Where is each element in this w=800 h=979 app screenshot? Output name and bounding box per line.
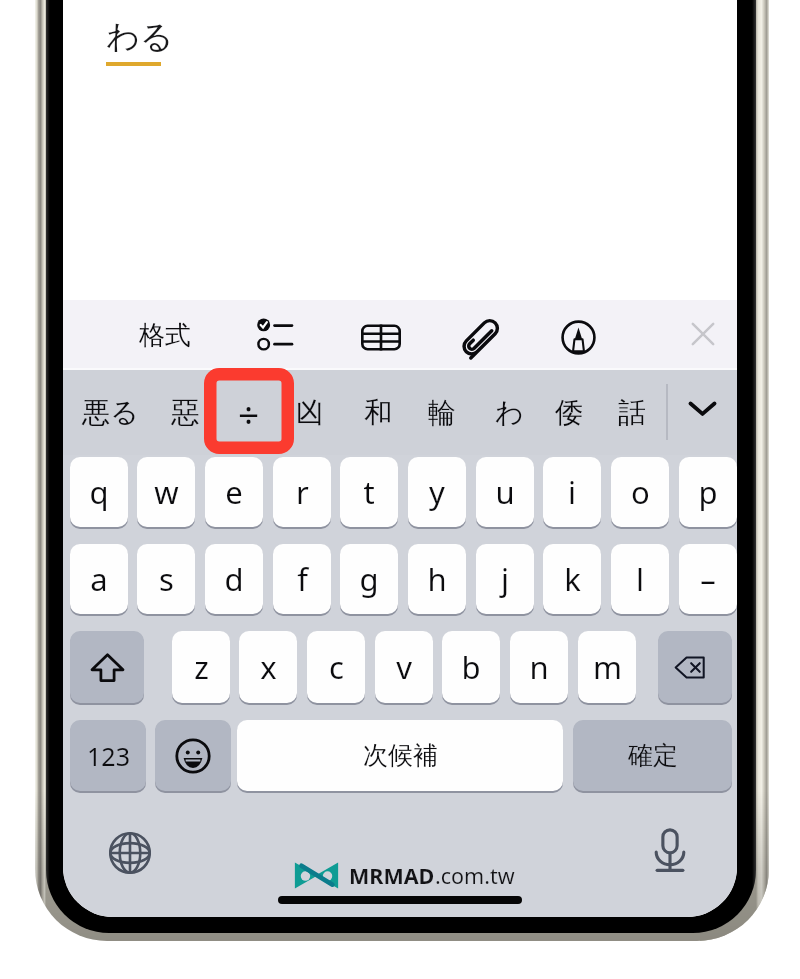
staticText: a	[90, 558, 108, 600]
staticText: q	[89, 471, 109, 513]
button[interactable]: s	[137, 544, 195, 614]
staticText: 凶	[296, 395, 324, 430]
staticText: 倭	[555, 395, 583, 430]
staticText: 輪	[428, 395, 456, 430]
button[interactable]: 確定	[573, 720, 732, 791]
button[interactable]: 話	[604, 370, 660, 455]
staticText: r	[296, 471, 309, 513]
staticText: –	[700, 558, 716, 600]
button[interactable]: Switch keyboard	[101, 824, 159, 882]
staticText: p	[698, 471, 718, 513]
button[interactable]: u	[476, 457, 534, 527]
button[interactable]: n	[510, 631, 568, 703]
button[interactable]: a	[70, 544, 128, 614]
button[interactable]: Dictation	[639, 820, 701, 882]
button[interactable]: b	[442, 631, 500, 703]
button[interactable]: p	[679, 457, 737, 527]
button[interactable]: m	[578, 631, 636, 703]
button[interactable]: g	[340, 544, 398, 614]
button[interactable]: h	[408, 544, 466, 614]
staticText: 話	[618, 395, 646, 430]
staticText: y	[429, 471, 445, 513]
button[interactable]: Attach	[455, 311, 505, 365]
button[interactable]: x	[239, 631, 297, 703]
staticText: k	[564, 558, 581, 600]
staticText: .com.tw	[435, 861, 515, 890]
button[interactable]: j	[476, 544, 534, 614]
button[interactable]: z	[172, 631, 230, 703]
staticText: h	[427, 558, 447, 600]
button[interactable]: Markup	[553, 312, 604, 363]
button[interactable]: w	[137, 457, 195, 527]
staticText: ÷	[238, 388, 260, 438]
staticText: j	[501, 558, 509, 600]
button[interactable]: 次候補	[237, 720, 563, 791]
staticText: 惡	[171, 395, 199, 430]
button[interactable]: y	[408, 457, 466, 527]
button[interactable]: l	[611, 544, 669, 614]
staticText: 次候補	[363, 740, 438, 771]
staticText: 確定	[628, 740, 678, 771]
staticText: b	[461, 646, 481, 688]
button[interactable]: 倭	[541, 370, 597, 455]
button[interactable]: 惡	[157, 370, 213, 455]
button[interactable]: 格式	[117, 300, 213, 370]
button[interactable]: Close	[680, 311, 726, 357]
button[interactable]: r	[273, 457, 331, 527]
staticText: 和	[364, 395, 392, 430]
staticText: 123	[87, 739, 130, 773]
staticText: w	[154, 471, 179, 513]
staticText: o	[631, 471, 650, 513]
staticText: g	[359, 558, 379, 600]
button[interactable]: 和	[350, 370, 406, 455]
button[interactable]: Checklist	[249, 309, 303, 360]
button[interactable]: t	[340, 457, 398, 527]
staticText: t	[363, 471, 375, 513]
staticText: わ	[495, 395, 524, 430]
button[interactable]: c	[307, 631, 365, 703]
staticText: x	[260, 646, 277, 688]
button[interactable]: –	[679, 544, 737, 614]
button[interactable]: d	[205, 544, 263, 614]
staticText: v	[396, 646, 412, 688]
button[interactable]: Backspace	[658, 631, 732, 703]
button[interactable]: ÷	[221, 370, 277, 455]
staticText: わる	[106, 16, 174, 58]
button[interactable]: Emoji	[155, 720, 231, 791]
staticText: 悪る	[82, 395, 139, 430]
button[interactable]: Shift	[70, 631, 144, 703]
button[interactable]: q	[70, 457, 128, 527]
staticText: l	[636, 558, 644, 600]
staticText: d	[224, 558, 244, 600]
staticText: f	[297, 558, 308, 600]
staticText: e	[225, 471, 243, 513]
button[interactable]: 輪	[414, 370, 470, 455]
staticText: n	[529, 646, 549, 688]
staticText: m	[593, 646, 622, 688]
staticText: z	[194, 646, 209, 688]
button[interactable]: Hide candidates	[674, 380, 730, 436]
button[interactable]: 悪る	[73, 370, 147, 455]
button[interactable]: f	[273, 544, 331, 614]
button[interactable]: v	[375, 631, 433, 703]
button[interactable]: o	[611, 457, 669, 527]
button[interactable]: i	[543, 457, 601, 527]
button[interactable]: Table	[353, 314, 409, 361]
button[interactable]: e	[205, 457, 263, 527]
button[interactable]: 123	[70, 720, 146, 791]
staticText: MRMAD	[349, 861, 435, 890]
staticText: i	[568, 471, 576, 513]
staticText: s	[159, 558, 174, 600]
button[interactable]: わ	[481, 370, 537, 455]
staticText: u	[495, 471, 515, 513]
staticText: 格式	[139, 319, 191, 352]
button[interactable]: 凶	[282, 370, 338, 455]
staticText: c	[329, 646, 344, 688]
button[interactable]: k	[543, 544, 601, 614]
